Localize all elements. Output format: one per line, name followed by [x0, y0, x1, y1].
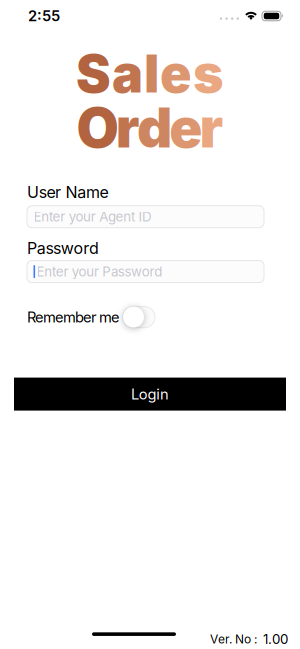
- staticText: a: [112, 43, 143, 104]
- staticText: Remember me: [27, 308, 120, 326]
- staticText: Enter your Agent ID: [33, 209, 152, 224]
- staticText: e: [169, 95, 202, 160]
- staticText: r: [116, 95, 140, 160]
- staticText: User Name: [27, 183, 109, 202]
- staticText: e: [160, 43, 192, 104]
- staticText: r: [199, 95, 223, 160]
- button[interactable]: Enter your Password: [27, 261, 264, 283]
- staticText: l: [144, 43, 159, 104]
- staticText: O: [76, 95, 118, 160]
- staticText: Ver. No :: [210, 632, 257, 646]
- button[interactable]: Enter your Agent ID: [27, 206, 264, 228]
- staticText: Enter your Password: [37, 264, 162, 279]
- staticText: 1.00: [263, 631, 288, 647]
- staticText: S: [76, 43, 111, 104]
- staticText: s: [193, 43, 224, 104]
- staticText: Login: [131, 385, 169, 403]
- staticText: Password: [27, 239, 99, 258]
- staticText: 2:55: [28, 7, 60, 25]
- button[interactable]: Login: [14, 378, 286, 411]
- button[interactable]: Remember me: [123, 307, 155, 328]
- staticText: d: [137, 95, 172, 160]
